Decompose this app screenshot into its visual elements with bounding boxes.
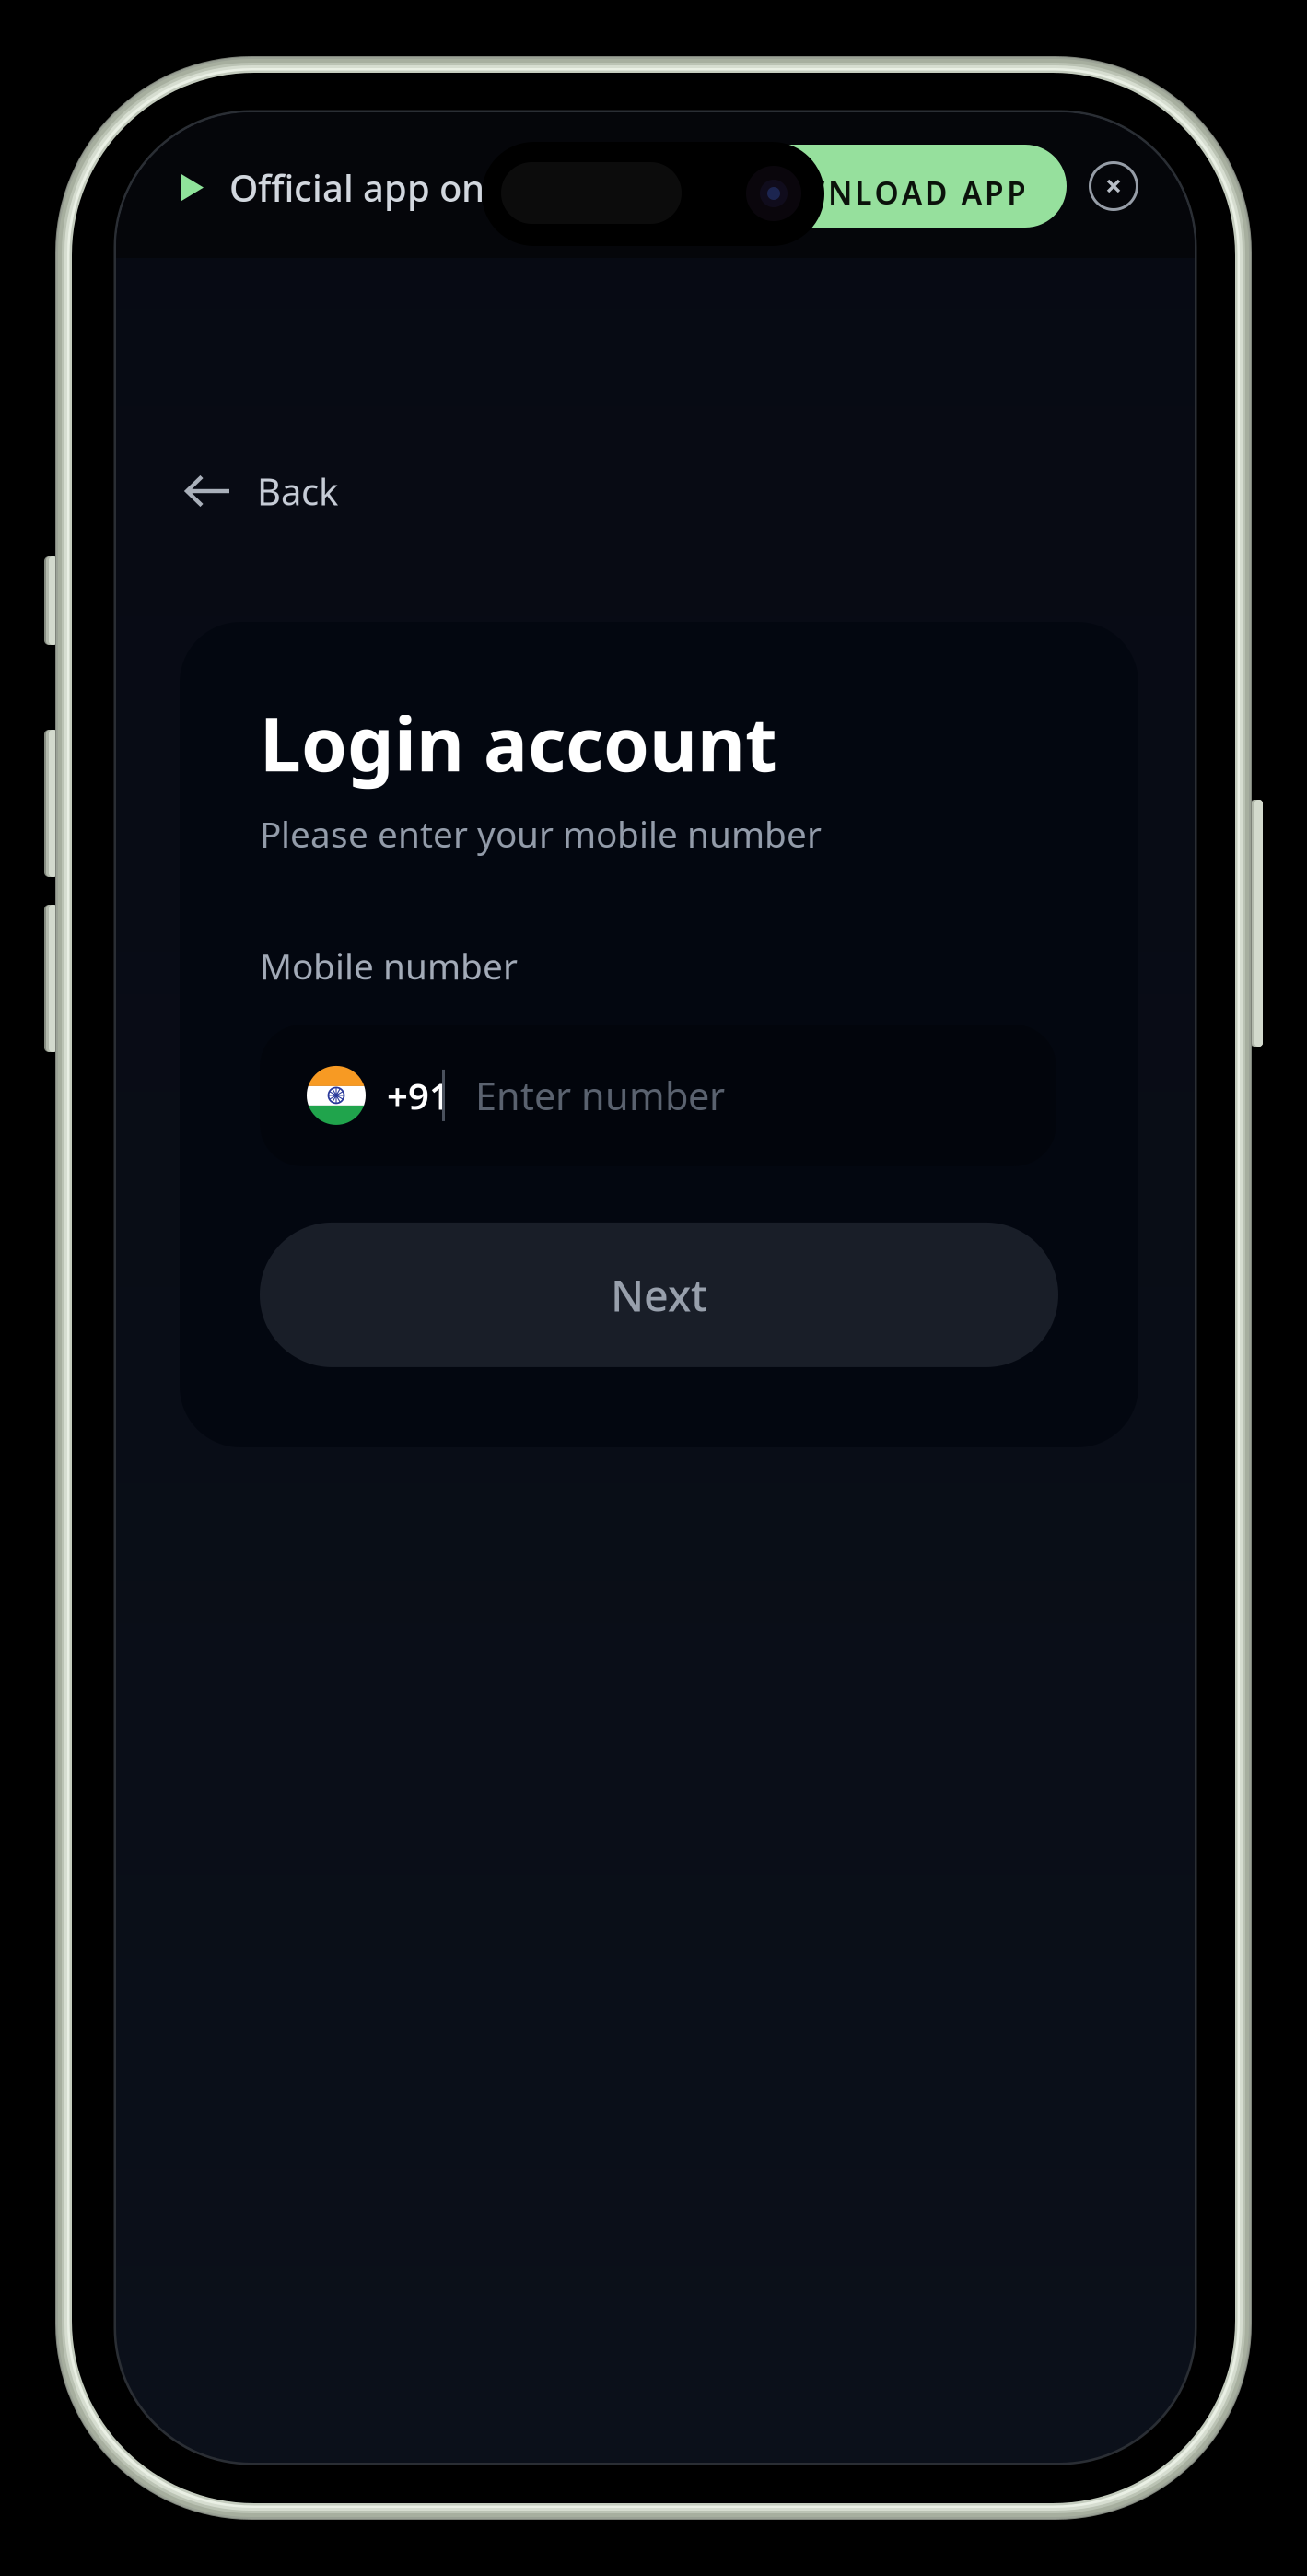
staticText: Mobile number	[260, 942, 518, 989]
staticText: Next	[611, 1266, 707, 1323]
staticText: DOWNLOAD APP	[743, 172, 1026, 213]
staticText: Official app on	[229, 163, 484, 212]
button[interactable]: Next	[260, 1222, 1058, 1367]
button[interactable]: Close	[1084, 157, 1143, 216]
staticText: Login account	[260, 694, 777, 792]
button[interactable]: Back	[184, 452, 424, 530]
button[interactable]: DOWNLOAD APP	[627, 145, 1067, 228]
staticText: Enter number	[475, 1070, 725, 1121]
button[interactable]: +91	[260, 1024, 1056, 1166]
staticText: Back	[257, 467, 338, 515]
staticText: Please enter your mobile number	[260, 810, 822, 857]
staticText: +91	[387, 1071, 450, 1120]
